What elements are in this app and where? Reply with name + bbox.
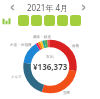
button[interactable]: Chart xyxy=(2,16,11,25)
staticText: 2021年 4月 xyxy=(27,2,68,13)
staticText: 支出 xyxy=(46,54,54,59)
staticText: 趣味・娯楽 xyxy=(33,35,51,40)
button[interactable]: Next month xyxy=(78,2,89,13)
button[interactable]: Category xyxy=(57,15,68,26)
staticText: 交際 xyxy=(63,91,71,96)
staticText: 食費 xyxy=(72,44,80,49)
button[interactable]: Previous month xyxy=(7,2,18,13)
button[interactable]: Category xyxy=(31,15,42,26)
button[interactable]: Category xyxy=(44,15,55,26)
staticText: クルマ xyxy=(11,75,23,80)
button[interactable]: Category xyxy=(70,15,81,26)
staticText: 水道・光熱費 xyxy=(10,43,32,48)
staticText: ¥136,373 xyxy=(33,61,68,72)
button[interactable]: Category xyxy=(18,15,29,26)
